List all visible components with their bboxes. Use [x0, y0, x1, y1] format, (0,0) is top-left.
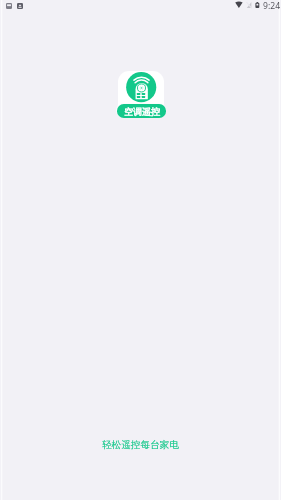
staticText: 空调遥控 [124, 106, 160, 117]
button[interactable]: 空调遥控 app icon [116, 71, 166, 118]
staticText: 9:24 [263, 0, 281, 11]
staticText: 轻松遥控每台家电 [102, 439, 179, 451]
